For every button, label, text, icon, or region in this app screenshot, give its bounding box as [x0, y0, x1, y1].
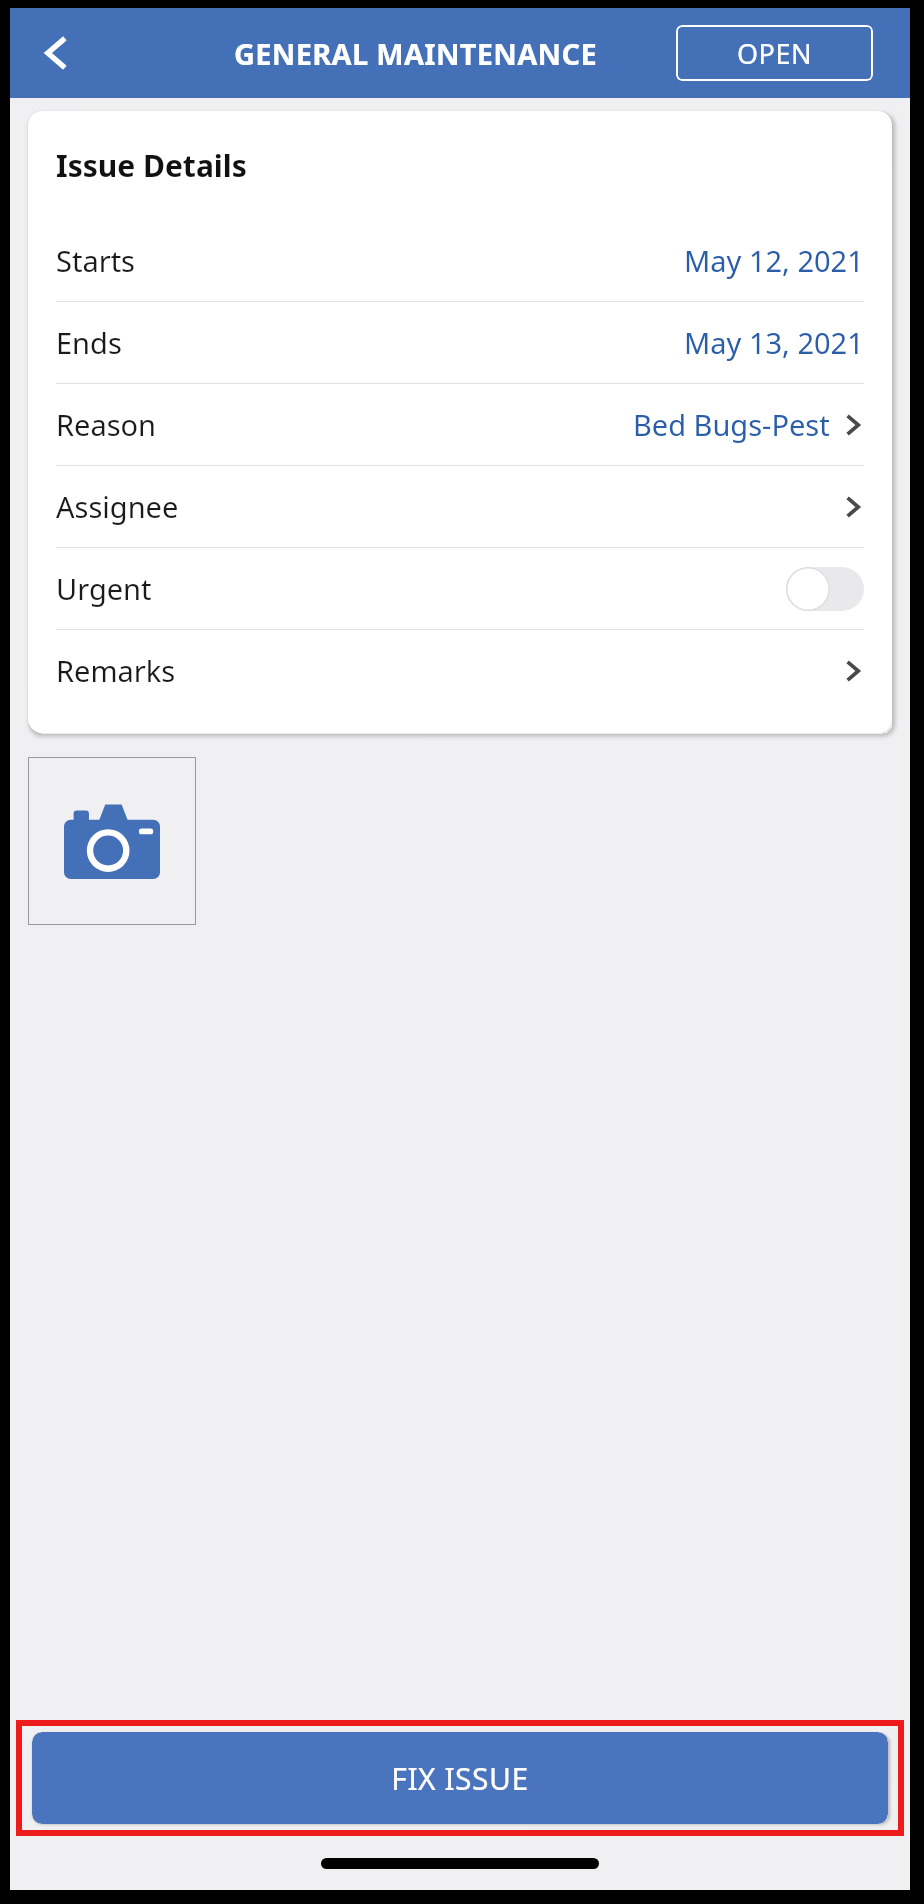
staticText: FIX ISSUE	[391, 1758, 529, 1799]
button[interactable]: Urgent toggle	[786, 567, 864, 611]
staticText: Issue Details	[56, 145, 247, 186]
button[interactable]: OPEN	[676, 25, 873, 81]
button[interactable]: Urgent	[28, 548, 892, 629]
staticText: Reason	[56, 405, 157, 444]
staticText: Starts	[56, 241, 135, 280]
button[interactable]: Reason	[28, 384, 892, 465]
staticText: Assignee	[56, 487, 179, 526]
button[interactable]: FIX ISSUE	[32, 1732, 888, 1824]
button[interactable]: Add photo	[28, 757, 196, 925]
staticText: GENERAL MAINTENANCE	[234, 34, 597, 73]
staticText: May 13, 2021	[684, 323, 864, 362]
staticText: Remarks	[56, 651, 176, 690]
staticText: Urgent	[56, 569, 152, 608]
button[interactable]: Back	[20, 17, 92, 89]
button[interactable]: Remarks	[28, 630, 892, 711]
button[interactable]: Ends	[28, 302, 892, 383]
staticText: Ends	[56, 323, 122, 362]
staticText: OPEN	[737, 35, 812, 72]
button[interactable]: Assignee	[28, 466, 892, 547]
staticText: May 12, 2021	[684, 241, 864, 280]
button[interactable]: Starts	[28, 220, 892, 301]
staticText: Bed Bugs-Pest	[633, 405, 830, 444]
